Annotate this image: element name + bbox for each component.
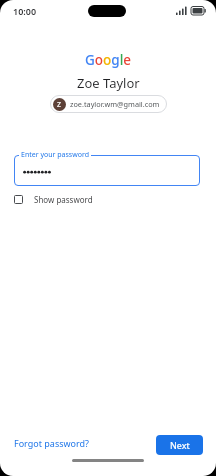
staticText: Next <box>170 439 190 451</box>
staticText: zoe.taylor.wm@gmail.com <box>70 99 160 109</box>
button[interactable] <box>14 155 200 186</box>
staticText: Forgot password? <box>14 437 90 449</box>
button[interactable]: Show password <box>12 192 95 207</box>
button[interactable]: Forgot password? <box>8 431 96 455</box>
staticText: Zoe Taylor <box>77 74 140 92</box>
staticText: Google <box>85 51 132 69</box>
staticText: Z <box>57 100 62 110</box>
button[interactable]: Z <box>50 95 167 113</box>
staticText: Enter your password <box>21 150 89 160</box>
staticText: 10:00 <box>13 5 37 17</box>
staticText: Show password <box>34 194 93 205</box>
button[interactable]: Next <box>156 435 203 455</box>
